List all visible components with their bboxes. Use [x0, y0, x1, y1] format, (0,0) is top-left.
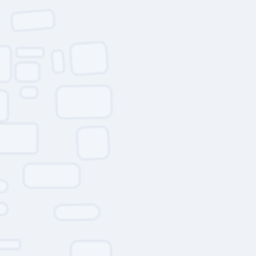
button[interactable]: Badge one — [0, 180, 7, 192]
button[interactable]: Tile one — [0, 46, 11, 82]
button[interactable]: Tile nine — [71, 241, 111, 256]
button[interactable]: Tile five — [71, 43, 107, 74]
button[interactable]: Wide card — [56, 86, 111, 118]
button[interactable]: Pill button — [54, 205, 99, 220]
button[interactable]: Tile four — [52, 50, 63, 72]
button[interactable]: Label bar — [16, 48, 43, 57]
button[interactable]: Tile eight — [24, 164, 80, 188]
button[interactable]: Tile two — [0, 90, 8, 121]
button[interactable]: Footer bar — [0, 240, 20, 249]
button[interactable]: Tile six — [0, 123, 37, 153]
button[interactable]: Tag — [20, 87, 37, 98]
button[interactable]: Badge two — [0, 203, 7, 215]
button[interactable]: Tile three — [15, 62, 39, 81]
button[interactable]: Featured card — [12, 11, 54, 29]
button[interactable]: Tile seven — [77, 127, 108, 159]
